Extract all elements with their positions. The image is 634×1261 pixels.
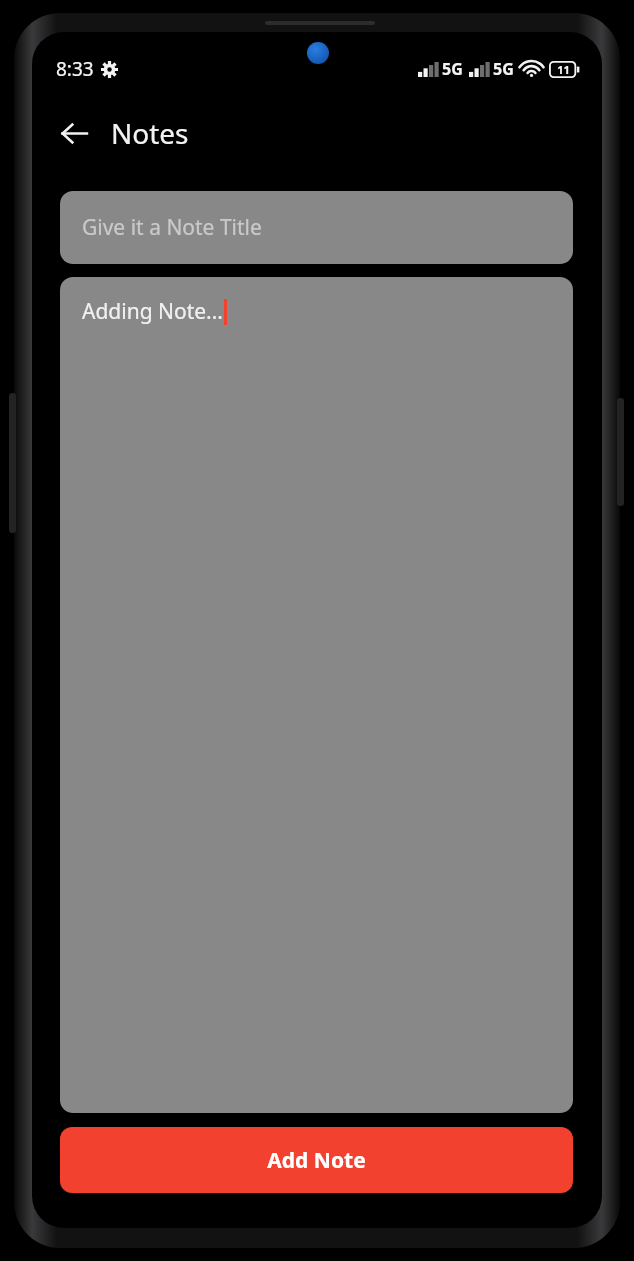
button[interactable]: Adding Note... xyxy=(60,277,573,1113)
button[interactable]: Give it a Note Title xyxy=(60,191,573,264)
button[interactable]: Back xyxy=(49,108,99,158)
staticText: 11 xyxy=(557,62,570,77)
staticText: 5G xyxy=(493,58,514,80)
staticText: Add Note xyxy=(267,1146,366,1175)
button[interactable]: Add Note xyxy=(60,1127,573,1193)
staticText: Give it a Note Title xyxy=(82,213,262,242)
staticText: Adding Note... xyxy=(82,297,223,326)
staticText: Notes xyxy=(111,114,189,152)
staticText: 5G xyxy=(442,58,463,80)
staticText: 8:33 xyxy=(56,56,94,82)
